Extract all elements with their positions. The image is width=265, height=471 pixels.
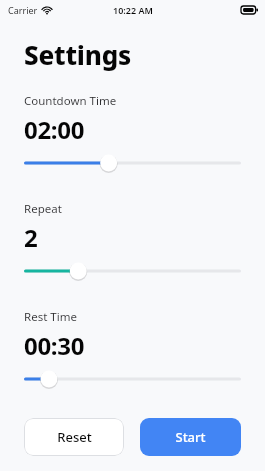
button[interactable]: Reset [24, 418, 124, 456]
staticText: Countdown Time [24, 93, 117, 109]
staticText: 2 [24, 221, 38, 254]
button[interactable] [24, 260, 241, 282]
staticText: Start [175, 428, 206, 446]
button[interactable] [24, 152, 241, 174]
staticText: 02:00 [24, 113, 85, 146]
staticText: 00:30 [24, 329, 85, 362]
staticText: Carrier [8, 4, 38, 16]
staticText: Reset [57, 428, 92, 446]
button[interactable]: Start [140, 418, 241, 456]
staticText: Settings [24, 37, 132, 72]
button[interactable] [24, 368, 241, 390]
staticText: 10:22 AM [113, 4, 153, 16]
staticText: Repeat [24, 201, 62, 217]
staticText: Rest Time [24, 309, 77, 325]
